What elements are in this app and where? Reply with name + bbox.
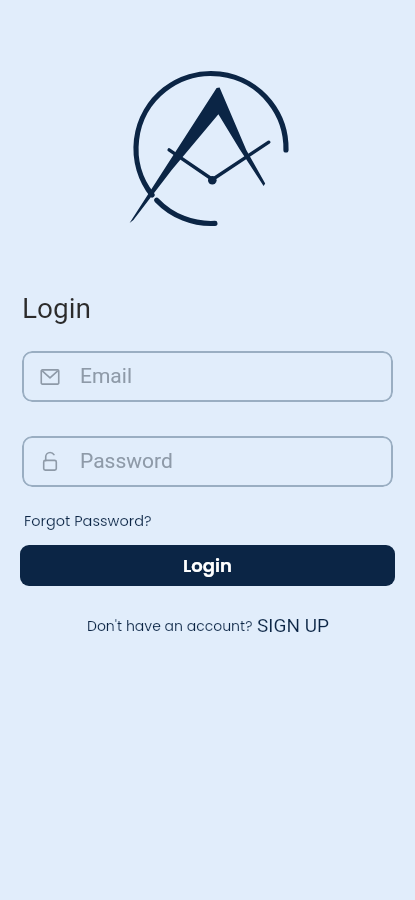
button[interactable]: Password	[22, 436, 393, 487]
other: Password	[41, 453, 59, 471]
staticText: Don't have an account?	[87, 616, 257, 636]
button[interactable]: Email	[22, 351, 393, 402]
button[interactable]: Login	[20, 545, 395, 586]
button[interactable]: SIGN UP	[257, 614, 329, 636]
staticText: Login	[183, 553, 232, 578]
button[interactable]: Forgot Password?	[24, 511, 152, 531]
staticText: Password	[80, 449, 173, 474]
staticText: Login	[22, 292, 92, 325]
staticText: Email	[80, 364, 132, 389]
other: Email	[41, 368, 59, 386]
